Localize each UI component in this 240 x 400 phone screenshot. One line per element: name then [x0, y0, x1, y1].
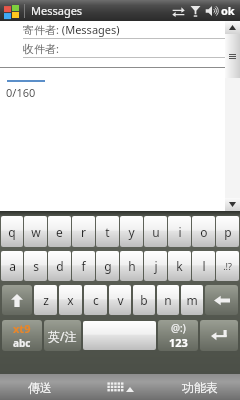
staticText: q [8, 224, 16, 240]
staticText: n [164, 292, 172, 308]
staticText: z [43, 292, 49, 308]
staticText: .!? [223, 260, 232, 272]
button[interactable]: s [24, 251, 47, 281]
button[interactable]: g [96, 251, 119, 281]
staticText: 123 [169, 335, 188, 350]
button[interactable]: w [24, 216, 47, 247]
staticText: u [152, 224, 160, 240]
staticText: x [67, 292, 74, 308]
button[interactable]: 傳送 [0, 374, 80, 400]
button[interactable]: Symbols [158, 320, 198, 351]
button[interactable]: Volume [203, 2, 221, 20]
staticText: k [176, 258, 183, 274]
button[interactable]: h [120, 251, 143, 281]
staticText: Messages [31, 3, 83, 18]
button[interactable]: Scroll up [225, 21, 240, 34]
button[interactable]: Keyboard [80, 374, 160, 400]
button[interactable]: Enter [200, 320, 238, 351]
staticText: c [93, 292, 99, 308]
button[interactable]: Signal [187, 2, 203, 20]
staticText: y [128, 224, 135, 240]
staticText: t [105, 224, 110, 240]
button[interactable]: q [1, 216, 23, 247]
button[interactable]: Start [2, 3, 20, 19]
button[interactable]: l [192, 251, 215, 281]
button[interactable]: XT9 abc [2, 320, 42, 351]
staticText: 0/160 [6, 85, 36, 100]
staticText: l [202, 258, 206, 274]
button[interactable]: f [72, 251, 95, 281]
staticText: 英/注 [48, 328, 77, 344]
staticText: v [117, 292, 124, 308]
button[interactable]: p [216, 216, 239, 247]
button[interactable]: o [192, 216, 215, 247]
staticText: (Messages) [59, 22, 120, 37]
button[interactable]: Scroll down [225, 198, 240, 211]
button[interactable]: n [157, 285, 179, 315]
button[interactable]: k [168, 251, 191, 281]
button[interactable]: m [181, 285, 203, 315]
staticText: g [104, 258, 112, 274]
button[interactable]: u [144, 216, 167, 247]
staticText: a [9, 258, 16, 274]
staticText: w [31, 224, 41, 240]
staticText: e [56, 224, 63, 240]
button[interactable]: Shift [2, 285, 32, 315]
button[interactable]: i [168, 216, 191, 247]
button[interactable]: Backspace [205, 285, 238, 315]
button[interactable]: r [72, 216, 95, 247]
button[interactable]: e [48, 216, 71, 247]
staticText: abc [13, 336, 31, 350]
staticText: s [33, 258, 39, 274]
button[interactable]: .!? [216, 251, 239, 281]
button[interactable]: z [34, 285, 57, 315]
button[interactable]: c [84, 285, 107, 315]
staticText: i [178, 224, 182, 240]
staticText: b [140, 292, 148, 308]
staticText: @:) [171, 321, 186, 335]
button[interactable]: 功能表 [160, 374, 240, 400]
staticText: 收件者: [23, 41, 59, 56]
button[interactable]: 收件者: [0, 39, 225, 57]
button[interactable]: Connectivity [169, 2, 187, 20]
staticText: o [200, 224, 208, 240]
button[interactable]: x [59, 285, 82, 315]
staticText: r [81, 224, 86, 240]
button[interactable]: y [120, 216, 143, 247]
button[interactable]: t [96, 216, 119, 247]
staticText: m [186, 292, 198, 308]
button[interactable]: ok [221, 3, 235, 18]
button[interactable]: d [48, 251, 71, 281]
button[interactable]: a [1, 251, 23, 281]
staticText: d [56, 258, 64, 274]
button[interactable]: Scroll thumb [225, 34, 240, 78]
button[interactable]: b [133, 285, 155, 315]
staticText: ok [221, 3, 235, 18]
staticText: j [154, 258, 158, 274]
staticText: h [128, 258, 136, 274]
button[interactable]: j [144, 251, 167, 281]
staticText: p [224, 224, 232, 240]
button[interactable]: 寄件者: [0, 21, 225, 38]
staticText: 功能表 [182, 380, 218, 395]
staticText: xt9 [13, 321, 31, 336]
button[interactable]: Language [44, 320, 81, 351]
staticText: 寄件者: [23, 22, 59, 37]
button[interactable] [83, 321, 156, 350]
staticText: 傳送 [28, 380, 52, 395]
staticText: f [81, 258, 86, 274]
button[interactable]: v [109, 285, 131, 315]
